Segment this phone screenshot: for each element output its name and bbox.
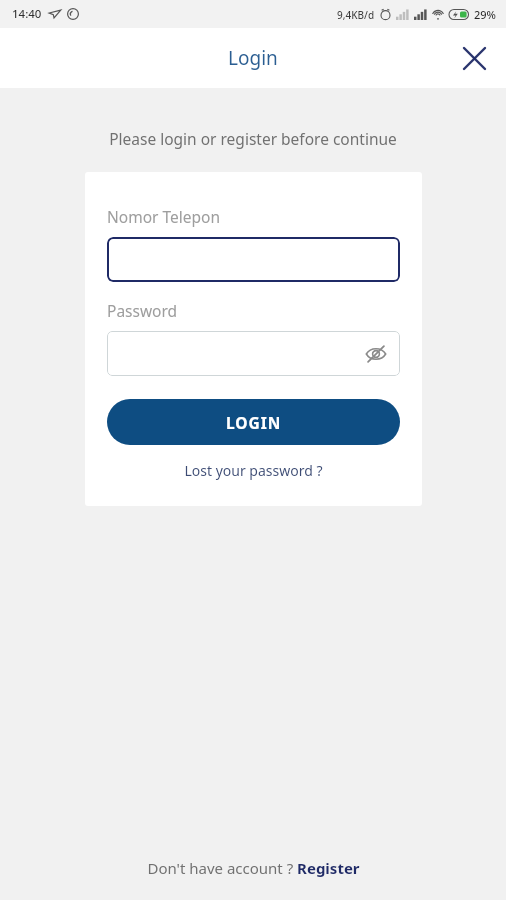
button[interactable]: Lost your password ? — [107, 461, 400, 480]
button[interactable]: Close — [450, 34, 498, 82]
staticText: Please login or register before continue — [109, 128, 397, 149]
staticText: 29% — [474, 7, 496, 22]
staticText: Lost your password ? — [184, 461, 323, 480]
staticText: Password — [107, 300, 178, 321]
button[interactable]: LOGIN — [107, 399, 400, 445]
button[interactable] — [107, 237, 400, 282]
staticText: Nomor Telepon — [107, 206, 220, 227]
staticText: Don't have account ? Register — [147, 858, 360, 878]
button[interactable]: Don't have account ? Register — [147, 858, 360, 878]
staticText: Login — [228, 45, 278, 71]
button[interactable]: Show password — [107, 331, 400, 376]
button[interactable]: Show password — [360, 338, 392, 370]
staticText: LOGIN — [226, 412, 282, 433]
staticText: 14:40 — [12, 6, 42, 22]
staticText: 9,4KB/d — [337, 8, 375, 22]
